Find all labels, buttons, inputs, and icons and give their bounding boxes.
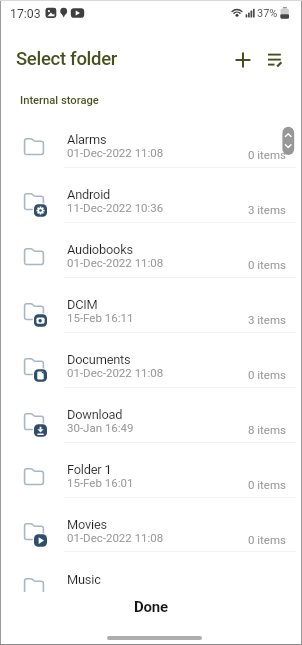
button[interactable]: Android [0, 175, 302, 230]
staticText: 3 items [248, 203, 286, 216]
staticText: 17:03 [10, 7, 41, 21]
staticText: Folder 1 [67, 462, 112, 477]
button[interactable]: Movies [0, 505, 302, 560]
staticText: 0 items [248, 148, 286, 161]
staticText: 15-Feb 16:01 [67, 476, 134, 489]
staticText: Movies [67, 517, 107, 532]
staticText: Audiobooks [67, 242, 133, 257]
staticText: 3 items [248, 313, 286, 326]
staticText: 37% [257, 7, 278, 20]
staticText: 8 items [248, 423, 286, 436]
button[interactable]: Audiobooks [0, 230, 302, 285]
staticText: Download [67, 407, 123, 422]
staticText: DCIM [67, 297, 98, 312]
staticText: 11-Dec-2022 10:36 [67, 201, 164, 214]
staticText: 01-Dec-2022 11:08 [67, 256, 164, 269]
staticText: 01-Dec-2022 11:08 [67, 531, 164, 544]
staticText: 15-Feb 16:11 [67, 311, 134, 324]
staticText: Documents [67, 352, 131, 367]
staticText: 01-Dec-2022 11:08 [67, 146, 164, 159]
button[interactable]: Folder 1 [0, 450, 302, 505]
button[interactable]: Alarms [0, 120, 302, 175]
staticText: 0 items [248, 258, 286, 271]
staticText: 0 items [248, 368, 286, 381]
button[interactable]: Music [0, 560, 302, 615]
button[interactable]: Done [118, 592, 184, 622]
staticText: 0 items [248, 478, 286, 491]
button[interactable]: Download [0, 395, 302, 450]
staticText: Android [67, 187, 111, 202]
button[interactable]: DCIM [0, 285, 302, 340]
staticText: Done [134, 598, 168, 616]
button[interactable] [259, 45, 289, 75]
staticText: 01-Dec-2022 11:08 [67, 366, 164, 379]
staticText: Music [67, 572, 101, 587]
button[interactable] [228, 45, 258, 75]
staticText: Select folder [16, 48, 118, 70]
button[interactable]: Documents [0, 340, 302, 395]
staticText: 30-Jan 16:49 [67, 421, 134, 434]
staticText: 0 items [248, 533, 286, 546]
staticText: Alarms [67, 132, 107, 147]
staticText: Internal storage [20, 94, 99, 107]
